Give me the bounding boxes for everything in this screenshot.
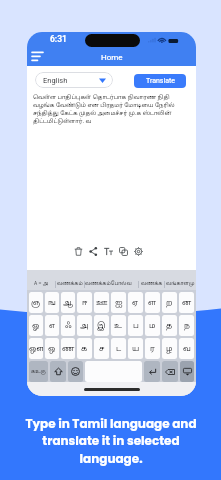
staticText: ச	[99, 344, 105, 353]
staticText: வங்காளமு	[166, 281, 195, 287]
staticText: 6:31	[50, 34, 67, 44]
button[interactable]: ஒ	[45, 338, 59, 359]
button[interactable]: வணக்கம்போல்வணக்கிறேன்	[85, 278, 138, 290]
button[interactable]: வணக்கம்	[56, 278, 84, 290]
staticText: ஆ	[63, 298, 73, 307]
button[interactable]: த	[162, 315, 177, 336]
button[interactable]: Share	[88, 246, 99, 257]
button[interactable]: A = அ	[27, 278, 55, 290]
button[interactable]: ஐ	[111, 292, 126, 313]
staticText: ஏ	[132, 298, 139, 307]
staticText: வ	[183, 344, 191, 353]
button[interactable]: ர	[145, 338, 160, 359]
button[interactable]: ஞ	[29, 292, 43, 313]
button[interactable]: Emoji	[68, 361, 83, 382]
staticText: ன	[182, 298, 192, 307]
staticText: ஈ	[82, 298, 88, 307]
button[interactable]: ங	[45, 292, 59, 313]
button[interactable]: ஏ	[128, 292, 143, 313]
button[interactable]: இ	[94, 315, 109, 336]
staticText: ஊ	[96, 298, 108, 307]
button[interactable]: Settings	[133, 246, 144, 257]
button[interactable]: உ	[111, 315, 126, 336]
staticText: ய	[132, 344, 140, 353]
button[interactable]: ப	[128, 315, 143, 336]
staticText: ர	[150, 344, 155, 353]
button[interactable]: Shift	[50, 361, 66, 382]
staticText: ழ	[166, 344, 173, 353]
button[interactable]: Text size	[103, 246, 114, 257]
staticText: ம	[149, 321, 156, 330]
button[interactable]: ஓ	[29, 315, 43, 336]
staticText: அ	[80, 321, 89, 330]
button[interactable]: ஊ	[94, 292, 109, 313]
staticText: Translate	[146, 77, 175, 85]
staticText: வணக்கம்	[57, 281, 83, 287]
staticText: வணக்கம்போல்வணக்கிறேன்	[85, 281, 138, 287]
staticText: வணக்க	[141, 281, 163, 287]
button[interactable]: எ	[45, 315, 59, 336]
staticText: Home	[101, 53, 123, 62]
button[interactable]: Hide keyboard	[180, 361, 194, 382]
button[interactable]: வங்காளமு	[165, 278, 196, 290]
button[interactable]: அ	[77, 315, 92, 336]
staticText: ஃ	[65, 321, 72, 330]
button[interactable]: ய	[128, 338, 143, 359]
staticText: ப	[133, 321, 139, 330]
button[interactable]: Backspace	[162, 361, 178, 382]
button[interactable]: ஔ	[29, 338, 43, 359]
staticText: எ	[49, 321, 56, 330]
staticText: உ	[114, 321, 123, 330]
staticText: ற	[166, 298, 173, 307]
staticText: கஉரு	[31, 369, 46, 375]
staticText: வெள்ள பாதிப்புகள் தொடர்பாக நிவாரண நிதி வ…	[33, 94, 176, 125]
button[interactable]: ஆ	[61, 292, 75, 313]
button[interactable]: Copy	[118, 246, 129, 257]
button[interactable]: ஃ	[61, 315, 75, 336]
staticText: ஐ	[115, 298, 123, 307]
staticText: ட	[116, 344, 122, 353]
staticText: ள	[148, 298, 157, 307]
staticText: ஒ	[48, 344, 56, 353]
button[interactable]: ழ	[162, 338, 177, 359]
staticText: ந	[184, 321, 190, 330]
button[interactable]: English	[35, 72, 113, 88]
button[interactable]: Translate	[134, 74, 186, 88]
button[interactable]: ந	[179, 315, 194, 336]
staticText: A = அ	[34, 281, 49, 287]
staticText: ஞ	[31, 298, 41, 307]
button[interactable]: ட	[111, 338, 126, 359]
staticText: த	[166, 321, 173, 330]
staticText: ங	[48, 298, 56, 307]
button[interactable]: Delete	[73, 246, 84, 257]
button[interactable]: ச	[94, 338, 109, 359]
button[interactable]: ண	[61, 338, 75, 359]
staticText: ஔ	[29, 344, 43, 353]
staticText: க	[81, 344, 88, 353]
button[interactable]: க	[77, 338, 92, 359]
button[interactable]: வணக்க	[139, 278, 164, 290]
button[interactable]: ம	[145, 315, 160, 336]
button[interactable]: ன	[179, 292, 194, 313]
staticText: இ	[97, 321, 106, 330]
button[interactable]: Enter	[144, 361, 160, 382]
button[interactable]: ற	[162, 292, 177, 313]
staticText: Type in Tamil language and translate it …	[21, 415, 201, 467]
staticText: ஓ	[32, 321, 40, 330]
staticText: English	[43, 76, 68, 85]
button[interactable]: வ	[179, 338, 194, 359]
button[interactable]: ள	[145, 292, 160, 313]
button[interactable]: Menu	[31, 51, 44, 62]
button[interactable]: Language	[29, 361, 48, 382]
button[interactable]: ஈ	[77, 292, 92, 313]
staticText: ண	[62, 344, 75, 353]
